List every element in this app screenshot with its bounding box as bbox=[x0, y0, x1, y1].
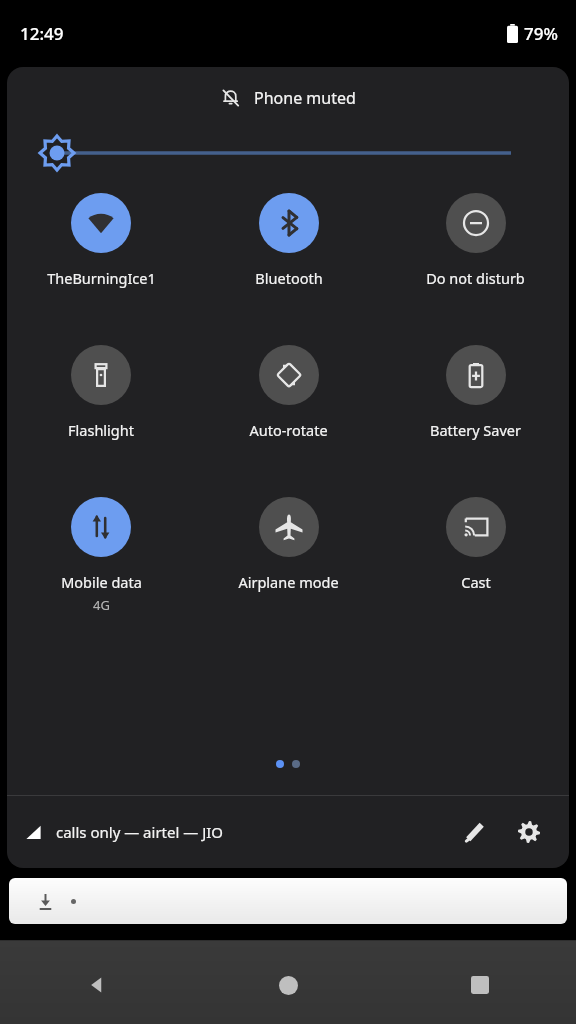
staticText: Airplane mode bbox=[238, 572, 339, 592]
button[interactable]: Edit tiles bbox=[453, 810, 497, 854]
button[interactable]: Battery Saver bbox=[382, 345, 569, 440]
button[interactable]: Cast bbox=[382, 497, 569, 592]
button[interactable]: Settings bbox=[507, 810, 551, 854]
button[interactable]: Download bbox=[9, 878, 567, 924]
staticText: 12:49 bbox=[20, 22, 64, 45]
staticText: Auto-rotate bbox=[249, 420, 328, 440]
staticText: Bluetooth bbox=[255, 268, 323, 288]
staticText: Battery Saver bbox=[430, 420, 521, 440]
button[interactable]: Airplane mode bbox=[195, 497, 382, 592]
other: Download bbox=[37, 893, 54, 910]
button[interactable]: Mobile data bbox=[7, 497, 195, 614]
button[interactable]: Bluetooth bbox=[195, 193, 382, 288]
staticText: Do not disturb bbox=[426, 268, 525, 288]
button[interactable]: Phone muted bbox=[7, 67, 569, 129]
staticText: 79% bbox=[524, 22, 558, 45]
staticText: calls only — airtel — JIO bbox=[56, 822, 224, 842]
button[interactable]: Back bbox=[0, 946, 192, 1024]
button[interactable]: Do not disturb bbox=[382, 193, 569, 288]
button[interactable]: Home bbox=[192, 946, 384, 1024]
staticText: Flashlight bbox=[68, 420, 134, 440]
staticText: TheBurningIce1 bbox=[47, 268, 156, 288]
staticText: 4G bbox=[93, 596, 110, 614]
button[interactable]: TheBurningIce1 bbox=[7, 193, 195, 288]
button[interactable]: Brightness bbox=[7, 129, 569, 177]
button[interactable]: Recent apps bbox=[384, 946, 576, 1024]
staticText: Mobile data bbox=[61, 572, 142, 592]
button[interactable]: Flashlight bbox=[7, 345, 195, 440]
button[interactable]: Auto-rotate bbox=[195, 345, 382, 440]
staticText: Phone muted bbox=[254, 87, 356, 109]
staticText: Cast bbox=[461, 572, 491, 592]
